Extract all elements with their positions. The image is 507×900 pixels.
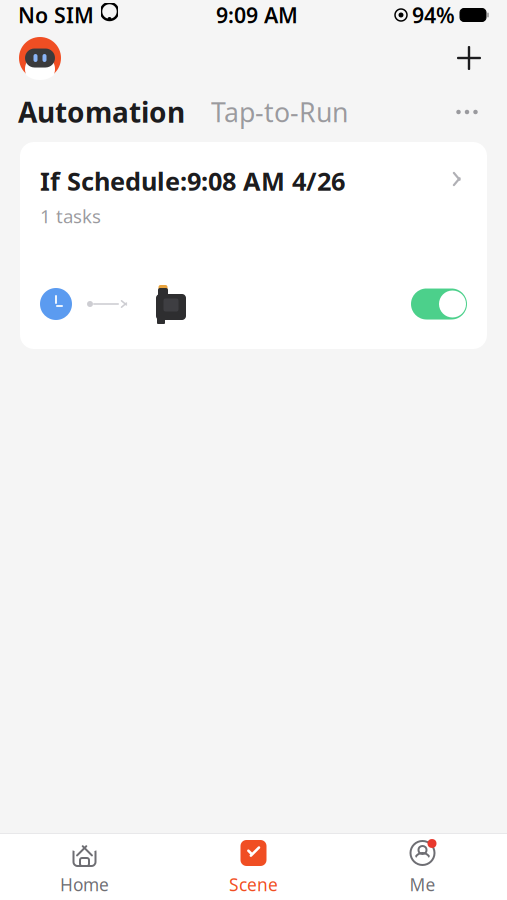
button[interactable]: Scene xyxy=(169,834,338,900)
button[interactable]: Automation xyxy=(18,93,185,131)
staticText: Tap-to-Run xyxy=(211,94,348,130)
button[interactable]: More options xyxy=(445,90,489,134)
staticText: 94% xyxy=(412,1,455,29)
staticText: Scene xyxy=(229,873,278,896)
button[interactable]: Home xyxy=(0,834,169,900)
button[interactable]: Automation enabled xyxy=(411,288,467,319)
staticText: Me xyxy=(409,873,435,896)
button[interactable]: Me xyxy=(338,834,507,900)
staticText: 1 tasks xyxy=(40,204,101,228)
button[interactable]: Tap-to-Run xyxy=(185,94,348,130)
staticText: Home xyxy=(60,873,109,896)
button[interactable]: Profile xyxy=(18,36,62,80)
staticText: 9:09 AM xyxy=(216,1,298,29)
button[interactable]: If Schedule:9:08 AM 4/26 xyxy=(20,142,487,349)
staticText: If Schedule:9:08 AM 4/26 xyxy=(40,164,345,198)
staticText: Automation xyxy=(18,93,185,131)
button[interactable]: Add xyxy=(449,38,489,78)
staticText: No SIM xyxy=(18,1,94,29)
